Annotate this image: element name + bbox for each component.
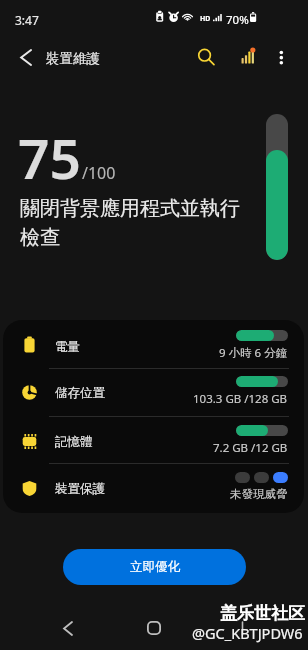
staticText: /100 xyxy=(82,162,116,184)
button[interactable]: Usage statistics xyxy=(234,43,262,71)
button[interactable]: Recent apps xyxy=(222,608,262,648)
staticText: 記憶體 xyxy=(55,434,93,450)
staticText: 儲存位置 xyxy=(55,385,105,401)
staticText: 75 xyxy=(18,120,81,195)
button[interactable]: 裝置維護 xyxy=(46,50,100,67)
button[interactable]: Home xyxy=(134,608,174,648)
staticText: 裝置保護 xyxy=(55,481,105,497)
staticText: 7.2 GB /12 GB xyxy=(213,440,288,456)
staticText: 裝置維護 xyxy=(46,50,100,67)
staticText: 立即優化 xyxy=(130,559,180,575)
button[interactable]: 立即優化 xyxy=(63,549,246,585)
staticText: 103.3 GB /128 GB xyxy=(193,391,288,407)
staticText: 關閉背景應用程式並執行檢查 xyxy=(20,196,246,250)
staticText: 9 小時 6 分鐘 xyxy=(219,345,288,361)
button[interactable]: 儲存位置 xyxy=(3,366,304,414)
staticText: HD xyxy=(200,14,211,24)
staticText: 電量 xyxy=(55,339,80,355)
button[interactable]: 記憶體 xyxy=(3,415,304,463)
staticText: 未發現威脅 xyxy=(230,487,288,501)
button[interactable]: 電量 xyxy=(3,320,304,368)
button[interactable]: Search xyxy=(192,43,220,71)
staticText: 3:47 xyxy=(15,12,39,28)
staticText: 70% xyxy=(226,12,249,28)
staticText: @GC_KBTJPDW6 xyxy=(192,623,303,643)
staticText: 盖乐世社区 xyxy=(220,603,305,624)
button[interactable]: Back xyxy=(8,42,44,72)
button[interactable]: More options xyxy=(267,43,295,71)
button[interactable]: Back xyxy=(48,608,88,648)
button[interactable]: 裝置保護 xyxy=(3,462,304,512)
